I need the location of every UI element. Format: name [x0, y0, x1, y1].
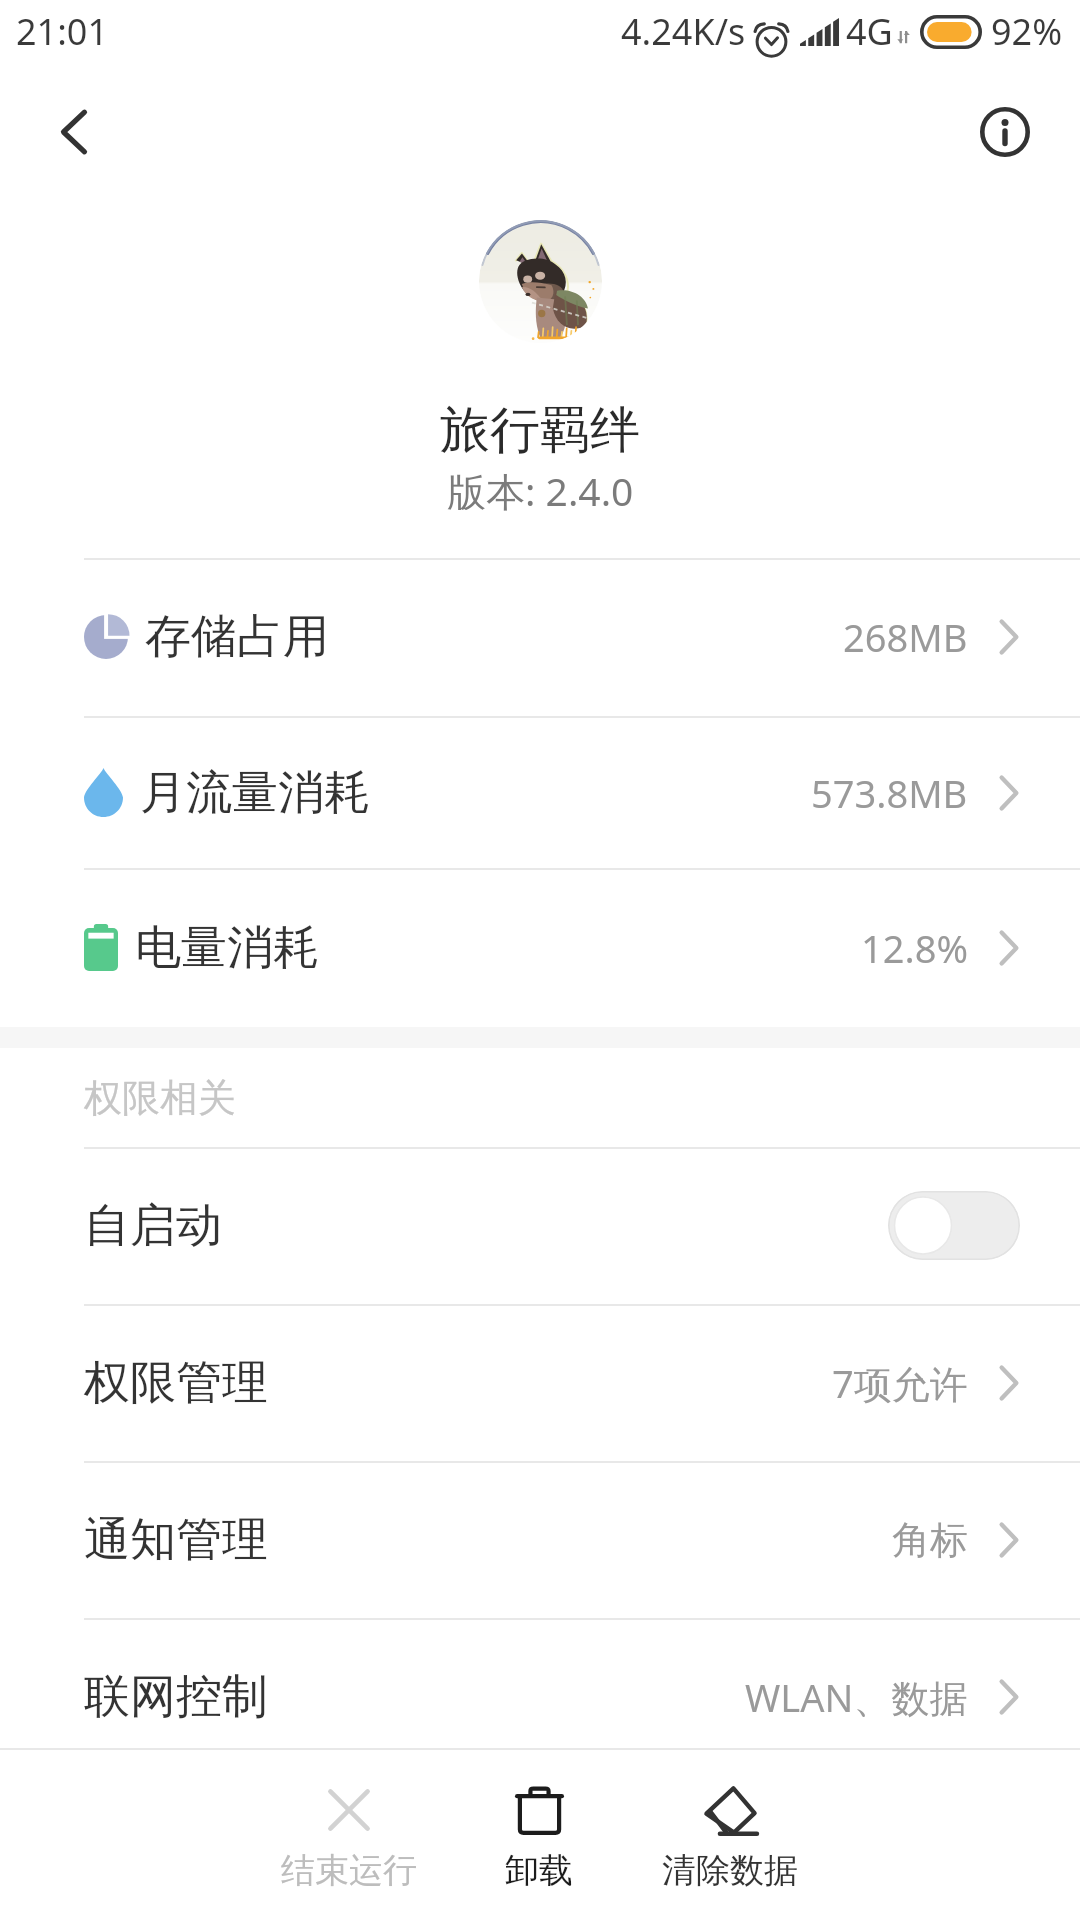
button[interactable]: 卸载: [444, 1770, 634, 1902]
button[interactable]: 通知管理: [0, 1461, 1080, 1618]
button[interactable]: Back: [26, 92, 106, 172]
button[interactable]: 存储占用: [0, 558, 1080, 716]
button[interactable]: 结束运行: [254, 1770, 444, 1902]
staticText: 旅行羁绊: [440, 399, 640, 462]
button[interactable]: 联网控制: [0, 1618, 1080, 1775]
staticText: 卸载: [505, 1849, 573, 1892]
staticText: WLAN、数据: [745, 1671, 968, 1723]
button[interactable]: 清除数据: [635, 1770, 825, 1902]
staticText: 通知管理: [84, 1511, 268, 1569]
staticText: 存储占用: [145, 608, 329, 666]
staticText: 权限相关: [84, 1074, 236, 1122]
staticText: 92%: [991, 7, 1063, 56]
staticText: 4.24K/s: [621, 7, 746, 56]
staticText: 573.8MB: [811, 767, 968, 819]
staticText: 权限管理: [84, 1354, 268, 1412]
staticText: 21:01: [16, 7, 109, 56]
staticText: 角标: [892, 1516, 968, 1564]
staticText: 清除数据: [662, 1849, 798, 1892]
button[interactable]: 电量消耗: [0, 868, 1080, 1027]
button[interactable]: 权限管理: [0, 1304, 1080, 1461]
staticText: 12.8%: [861, 922, 968, 974]
staticText: 版本: 2.4.0: [447, 464, 634, 514]
button[interactable]: 自启动: [0, 1147, 1080, 1304]
staticText: 自启动: [84, 1197, 222, 1255]
button[interactable]: App info: [965, 92, 1045, 172]
button[interactable]: 月流量消耗: [0, 716, 1080, 869]
staticText: 7项允许: [832, 1357, 968, 1409]
staticText: 电量消耗: [135, 919, 319, 977]
staticText: 268MB: [843, 611, 968, 663]
button[interactable]: Autostart toggle, off: [888, 1191, 1020, 1260]
staticText: 月流量消耗: [140, 764, 370, 822]
staticText: 联网控制: [84, 1668, 268, 1726]
staticText: 4G: [846, 7, 893, 56]
staticText: 结束运行: [281, 1849, 417, 1892]
